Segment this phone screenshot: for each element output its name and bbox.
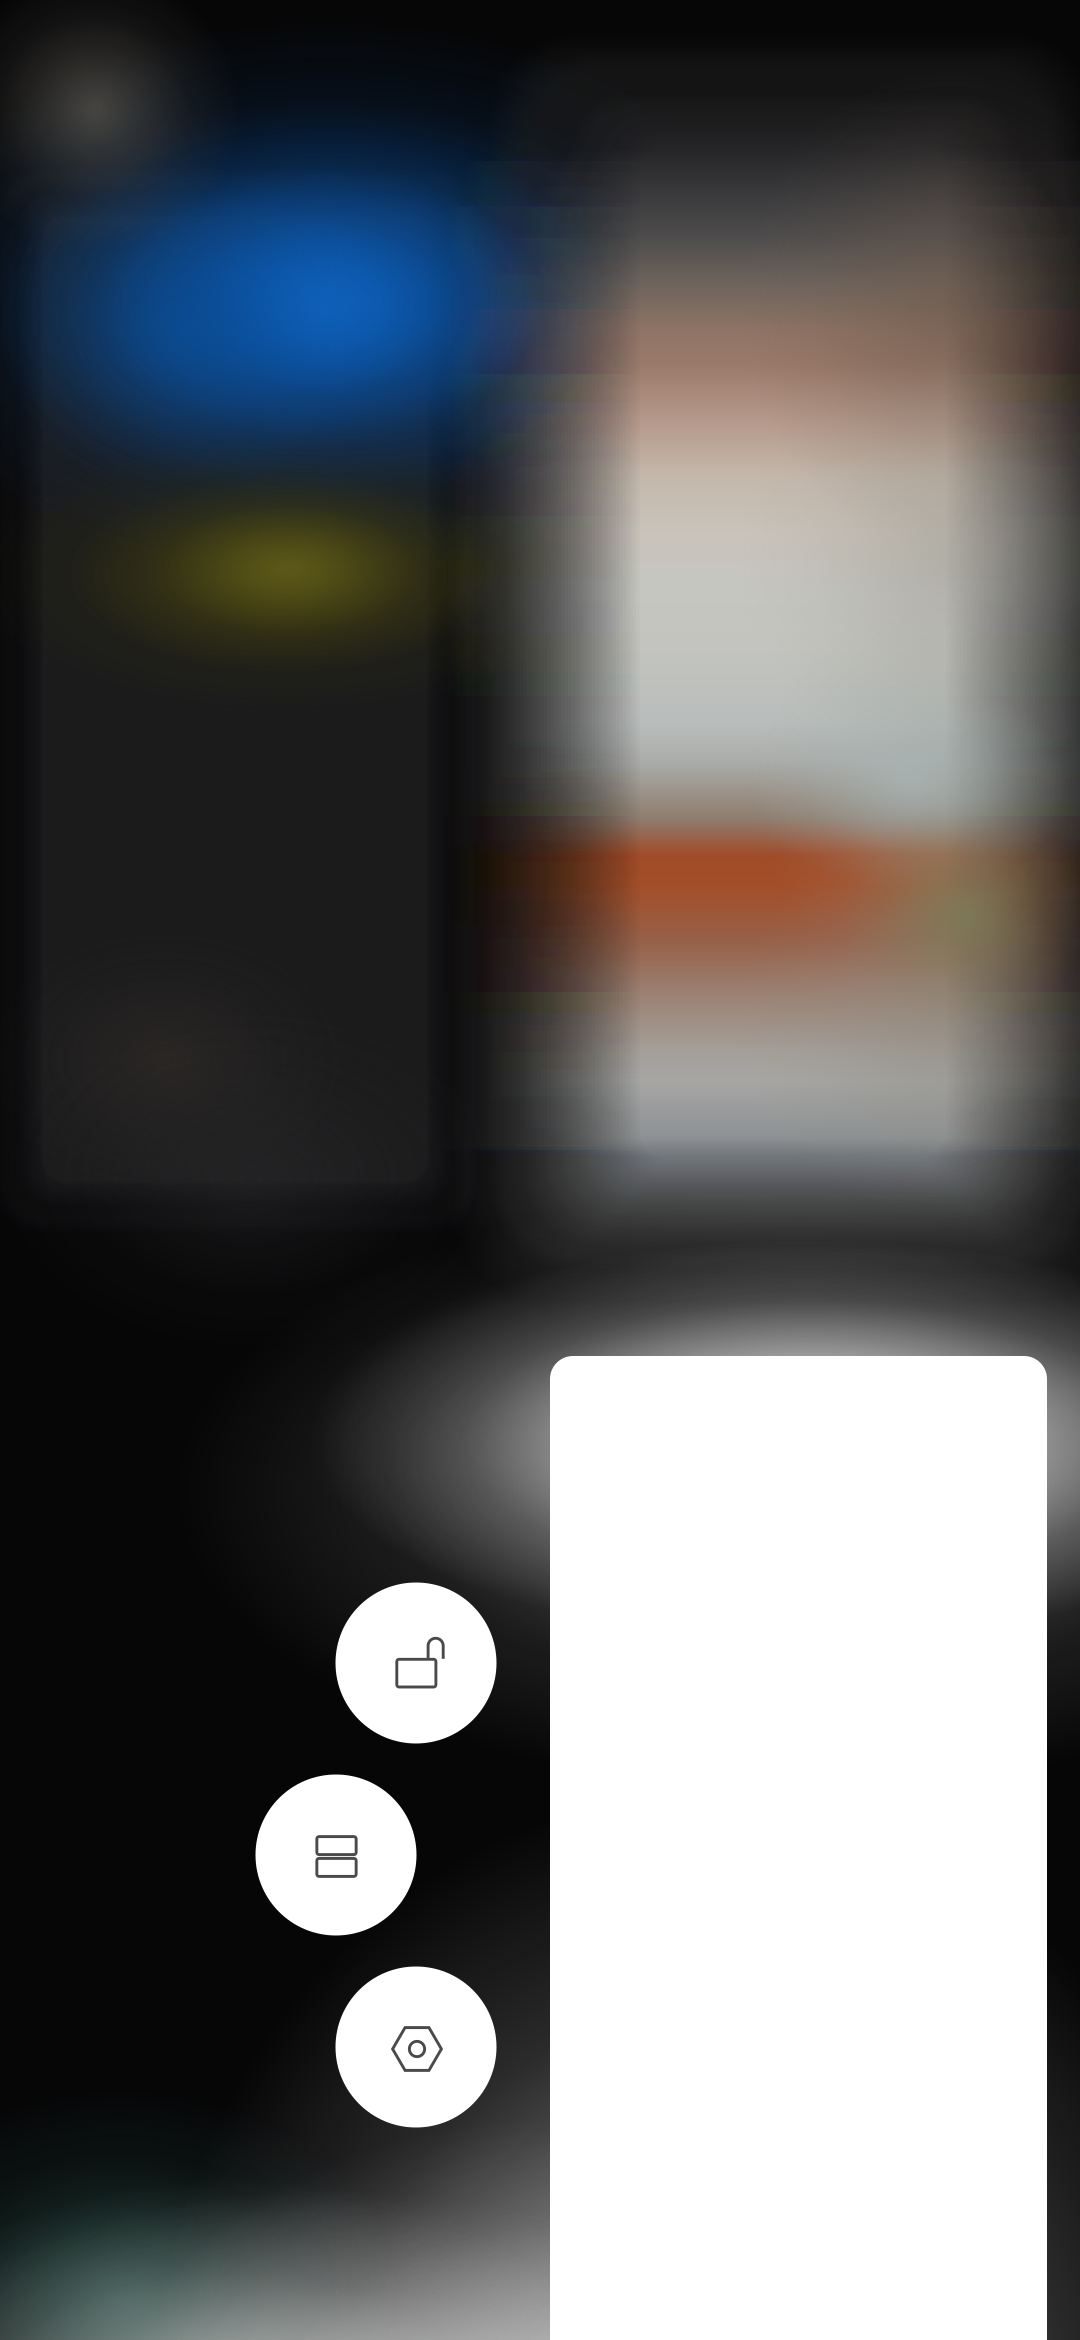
button[interactable]: Settings <box>335 1966 496 2127</box>
button[interactable]: Unlock <box>335 1582 496 1743</box>
button[interactable]: Split View <box>255 1774 416 1935</box>
